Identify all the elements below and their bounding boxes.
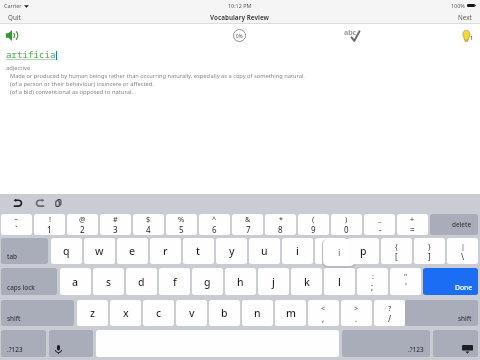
staticText: $	[146, 214, 151, 224]
button[interactable]: :	[357, 268, 388, 295]
button[interactable]: tab	[1, 238, 48, 264]
button[interactable]: .?123	[1, 330, 46, 357]
button[interactable]: caps lock	[1, 268, 57, 295]
button[interactable]: .?123	[342, 330, 430, 357]
button[interactable]: j	[258, 268, 289, 295]
staticText: n	[254, 306, 261, 320]
button[interactable]: l	[324, 268, 355, 295]
button[interactable]: shift	[405, 300, 478, 326]
staticText: @	[79, 214, 86, 224]
button[interactable]: |	[447, 238, 478, 264]
button[interactable]: g	[192, 268, 223, 295]
button[interactable]: v	[176, 300, 207, 326]
staticText: Vocabulary Review	[210, 13, 269, 22]
staticText: Done	[455, 283, 473, 292]
staticText: 10:12 PM	[228, 2, 252, 9]
button[interactable]: q	[51, 238, 82, 264]
staticText: .?123	[408, 345, 424, 354]
staticText: :	[372, 271, 374, 281]
button[interactable]: Next	[457, 12, 473, 23]
button[interactable]: e	[117, 238, 148, 264]
staticText: ^	[212, 214, 217, 224]
button[interactable]: ?	[374, 300, 405, 326]
staticText: delete	[452, 220, 472, 229]
staticText: t	[196, 244, 201, 258]
button[interactable]: @	[67, 214, 98, 235]
staticText: >	[354, 303, 359, 313]
staticText: .?123	[7, 345, 23, 354]
button[interactable]: Done	[423, 268, 478, 295]
button[interactable]: i	[323, 239, 355, 266]
staticText: +	[410, 214, 415, 224]
button[interactable]: delete	[430, 214, 478, 235]
button[interactable]: ~	[1, 214, 32, 235]
button[interactable]: w	[84, 238, 115, 264]
button[interactable]: Progress	[233, 29, 246, 42]
button[interactable]: s	[93, 268, 124, 295]
button[interactable]: *	[265, 214, 296, 235]
staticText: 8	[278, 224, 283, 235]
button[interactable]: c	[143, 300, 174, 326]
button[interactable]: p	[348, 238, 379, 264]
staticText: r	[163, 244, 168, 258]
button[interactable]: (	[298, 214, 329, 235]
button[interactable]: n	[242, 300, 273, 326]
button[interactable]: {	[381, 238, 412, 264]
button[interactable]	[315, 238, 346, 264]
staticText: b	[221, 306, 228, 320]
button[interactable]: b	[209, 300, 240, 326]
button[interactable]: x	[110, 300, 141, 326]
staticText: #	[113, 214, 118, 224]
staticText: a	[72, 275, 79, 289]
button[interactable]: _	[364, 214, 395, 235]
staticText: p	[360, 244, 367, 258]
button[interactable]: >	[341, 300, 372, 326]
button[interactable]: d	[126, 268, 157, 295]
button[interactable]: )	[331, 214, 362, 235]
button[interactable]: a	[60, 268, 91, 295]
staticText: 2	[80, 224, 85, 235]
button[interactable]: "	[390, 268, 421, 295]
staticText: "	[404, 271, 408, 281]
staticText: ~	[14, 214, 19, 224]
button[interactable]: u	[249, 238, 280, 264]
button[interactable]: }	[414, 238, 445, 264]
staticText: shift	[7, 314, 21, 323]
button[interactable]: t	[183, 238, 214, 264]
staticText: `	[15, 224, 18, 235]
button[interactable]: Play pronunciation	[5, 29, 19, 42]
button[interactable]: y	[216, 238, 247, 264]
button[interactable]: &	[232, 214, 263, 235]
button[interactable]: #	[100, 214, 131, 235]
button[interactable]: r	[150, 238, 181, 264]
button[interactable]: i	[282, 238, 313, 264]
button[interactable]: Quit	[7, 12, 22, 23]
button[interactable]: Undo	[11, 196, 27, 210]
button[interactable]: h	[225, 268, 256, 295]
button[interactable]: Hint	[460, 28, 476, 43]
button[interactable]: Paste	[51, 196, 67, 210]
button[interactable]: $	[133, 214, 164, 235]
button[interactable]: <	[308, 300, 339, 326]
button[interactable]: Redo	[31, 196, 47, 210]
button[interactable]: Dictation	[49, 330, 93, 357]
button[interactable]: ^	[199, 214, 230, 235]
button[interactable]: f	[159, 268, 190, 295]
button[interactable]: +	[397, 214, 428, 235]
button[interactable]: shift	[1, 300, 74, 326]
button[interactable]: %	[166, 214, 197, 235]
staticText: y	[229, 244, 235, 258]
staticText: h	[237, 275, 244, 289]
staticText: i	[338, 246, 341, 259]
button[interactable]: m	[275, 300, 306, 326]
button[interactable]: !	[34, 214, 65, 235]
staticText: |	[461, 241, 465, 251]
staticText: i	[296, 244, 299, 258]
staticText: {	[395, 241, 398, 251]
button[interactable]: Hide keyboard	[433, 330, 478, 357]
button[interactable]: Spell check	[344, 28, 362, 43]
button[interactable]: k	[291, 268, 322, 295]
button[interactable]: z	[77, 300, 108, 326]
staticText: w	[95, 244, 104, 258]
